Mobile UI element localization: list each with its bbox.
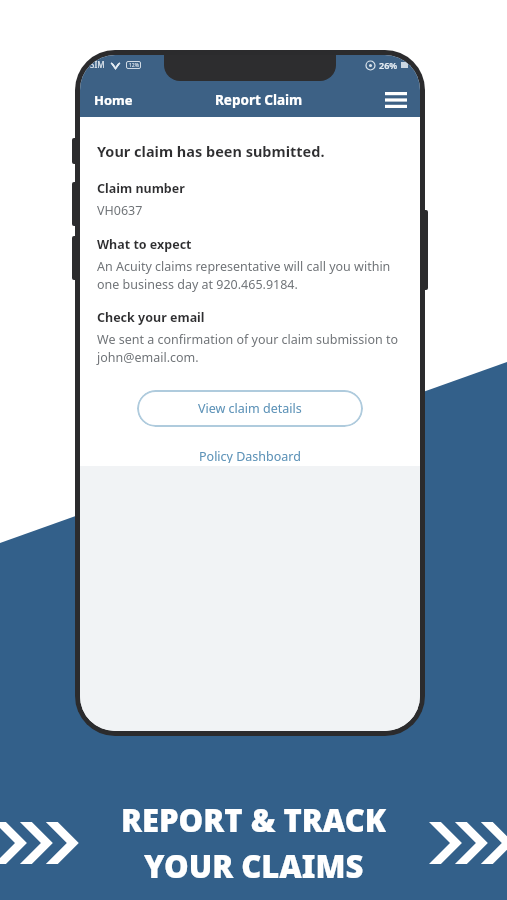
staticText: Policy Dashboard bbox=[199, 448, 301, 463]
button[interactable]: Policy Dashboard bbox=[189, 445, 311, 466]
staticText: Your claim has been submitted. bbox=[97, 141, 325, 161]
staticText: Claim number bbox=[97, 180, 185, 197]
staticText: We sent a confirmation of your claim sub… bbox=[97, 331, 403, 366]
staticText: Home bbox=[94, 91, 133, 109]
staticText: An Acuity claims representative will cal… bbox=[97, 258, 403, 293]
staticText: 12% bbox=[129, 62, 139, 69]
staticText: 26% bbox=[379, 59, 398, 71]
staticText: Report Claim bbox=[215, 91, 303, 109]
button[interactable]: View claim details bbox=[137, 390, 363, 427]
staticText: SIM bbox=[90, 59, 105, 70]
button[interactable]: Menu bbox=[377, 91, 420, 109]
staticText: YOUR CLAIMS bbox=[144, 845, 364, 887]
staticText: VH0637 bbox=[97, 202, 143, 219]
staticText: View claim details bbox=[198, 400, 302, 417]
staticText: Check your email bbox=[97, 309, 205, 326]
staticText: What to expect bbox=[97, 236, 192, 253]
button[interactable]: Home bbox=[80, 91, 141, 109]
staticText: REPORT & TRACK bbox=[121, 799, 387, 841]
